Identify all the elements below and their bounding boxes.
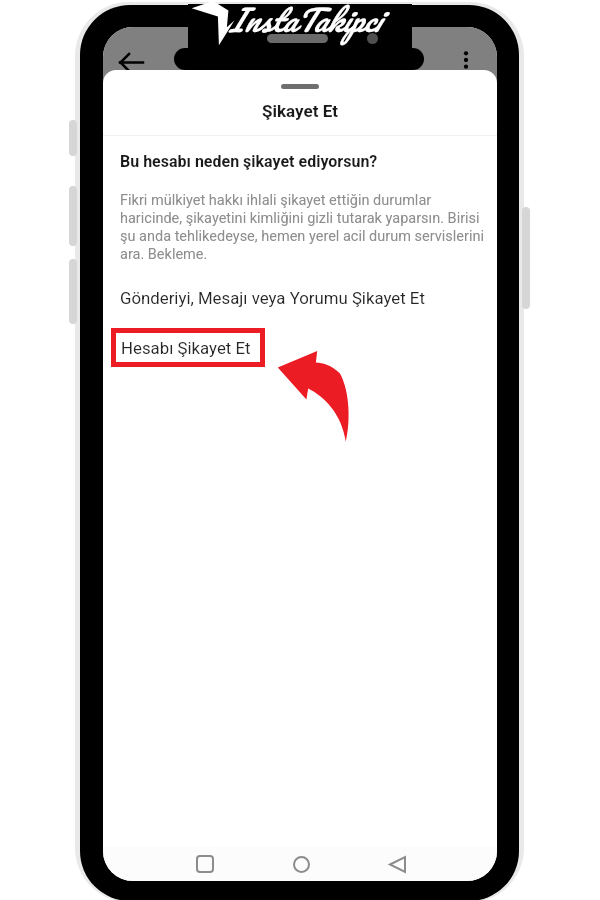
button[interactable]: Gönderiyi, Mesajı veya Yorumu Şikayet Et [103, 285, 497, 311]
staticText: Hesabı Şikayet Et [121, 338, 251, 358]
staticText: Bu hesabı neden şikayet ediyorsun? [120, 152, 378, 171]
staticText: InstaTakipci [229, 0, 380, 45]
staticText: Gönderiyi, Mesajı veya Yorumu Şikayet Et [120, 288, 425, 308]
button[interactable]: Hesabı Şikayet Et [111, 328, 265, 367]
button[interactable]: More options [451, 45, 481, 75]
staticText: Fikri mülkiyet hakkı ihlali şikayet etti… [120, 192, 489, 263]
button[interactable]: Back [375, 847, 419, 881]
button[interactable]: Back [114, 45, 148, 79]
button[interactable]: Recents [183, 847, 227, 881]
staticText: Şikayet Et [103, 101, 497, 121]
button[interactable]: Home [279, 847, 323, 881]
